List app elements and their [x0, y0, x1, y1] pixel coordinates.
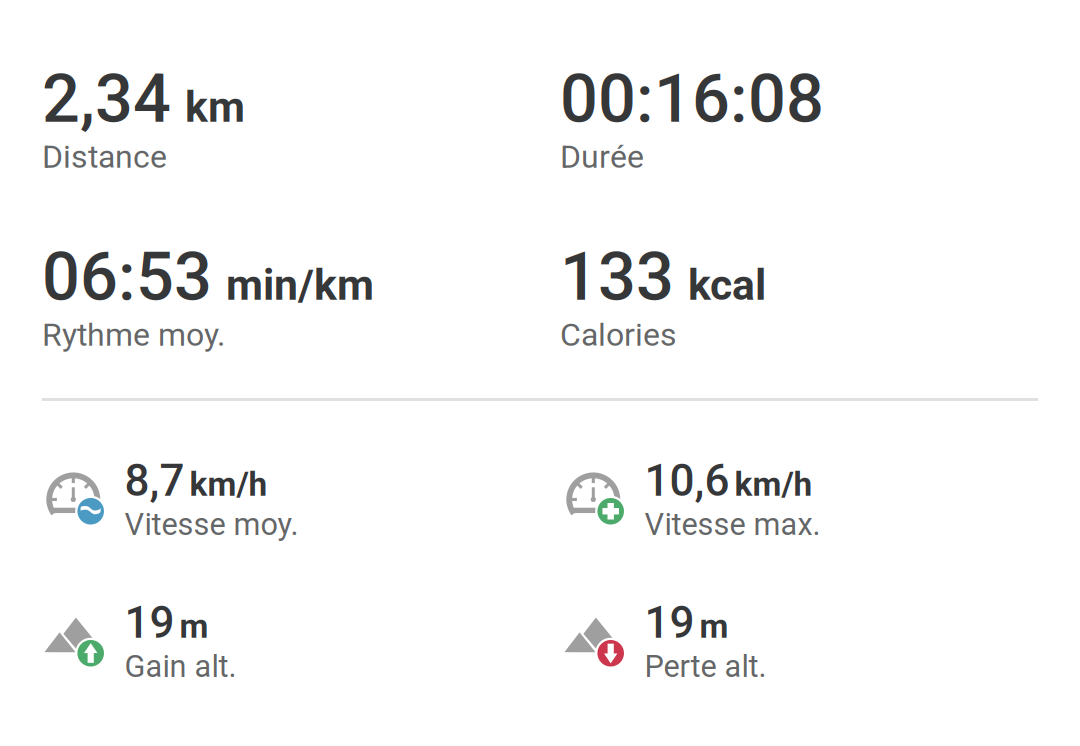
button[interactable]: 133 [560, 238, 766, 354]
staticText: km [185, 82, 245, 132]
button[interactable]: 8,7 [43, 455, 298, 542]
staticText: Rythme moy. [42, 316, 225, 354]
button[interactable]: 19 [563, 597, 766, 684]
staticText: 19 [644, 597, 694, 649]
button[interactable]: 06:53 [42, 238, 374, 354]
staticText: 06:53 [42, 238, 212, 316]
staticText: Vitesse max. [644, 507, 820, 542]
staticText: m [179, 607, 208, 646]
staticText: km/h [734, 465, 812, 504]
staticText: Calories [560, 316, 677, 354]
staticText: Vitesse moy. [124, 507, 298, 542]
staticText: kcal [688, 260, 766, 310]
staticText: Perte alt. [644, 649, 766, 684]
staticText: min/km [226, 260, 374, 310]
staticText: Gain alt. [124, 649, 236, 684]
staticText: 19 [124, 597, 174, 649]
button[interactable]: 2,34 [42, 60, 245, 176]
staticText: 00:16:08 [560, 60, 824, 138]
staticText: 133 [560, 238, 674, 316]
staticText: 10,6 [644, 455, 729, 507]
staticText: 2,34 [42, 60, 171, 138]
staticText: Distance [42, 138, 167, 176]
staticText: km/h [189, 465, 267, 504]
staticText: Durée [560, 138, 644, 176]
staticText: m [699, 607, 728, 646]
button[interactable]: 10,6 [563, 455, 820, 542]
button[interactable]: 00:16:08 [560, 60, 824, 176]
staticText: 8,7 [124, 455, 184, 507]
button[interactable]: 19 [43, 597, 236, 684]
